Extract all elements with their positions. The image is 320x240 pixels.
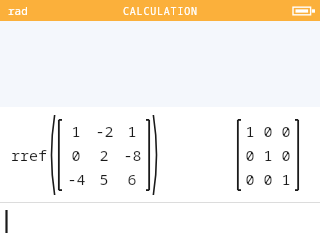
staticText: 0 [71, 145, 81, 165]
button[interactable]: rref [0, 107, 320, 202]
staticText: 1 [263, 145, 273, 165]
staticText: 0 [263, 121, 273, 141]
staticText: 1 [245, 121, 255, 141]
button[interactable]: Battery status [293, 4, 315, 18]
staticText: 6 [127, 169, 137, 189]
staticText: 0 [281, 121, 291, 141]
button[interactable]: rad [6, 1, 30, 20]
staticText: -2 [95, 121, 114, 141]
staticText: 0 [245, 169, 255, 189]
staticText: CALCULATION [123, 4, 198, 18]
staticText: 0 [281, 145, 291, 165]
staticText: rref [11, 145, 48, 165]
staticText: 1 [71, 121, 81, 141]
staticText: 5 [99, 169, 109, 189]
staticText: 1 [281, 169, 291, 189]
staticText: rad [8, 3, 28, 18]
staticText: 2 [99, 145, 109, 165]
staticText: -8 [123, 145, 142, 165]
staticText: 0 [263, 169, 273, 189]
staticText: 1 [127, 121, 137, 141]
staticText: 0 [245, 145, 255, 165]
button[interactable] [0, 203, 320, 240]
staticText: -4 [67, 169, 86, 189]
